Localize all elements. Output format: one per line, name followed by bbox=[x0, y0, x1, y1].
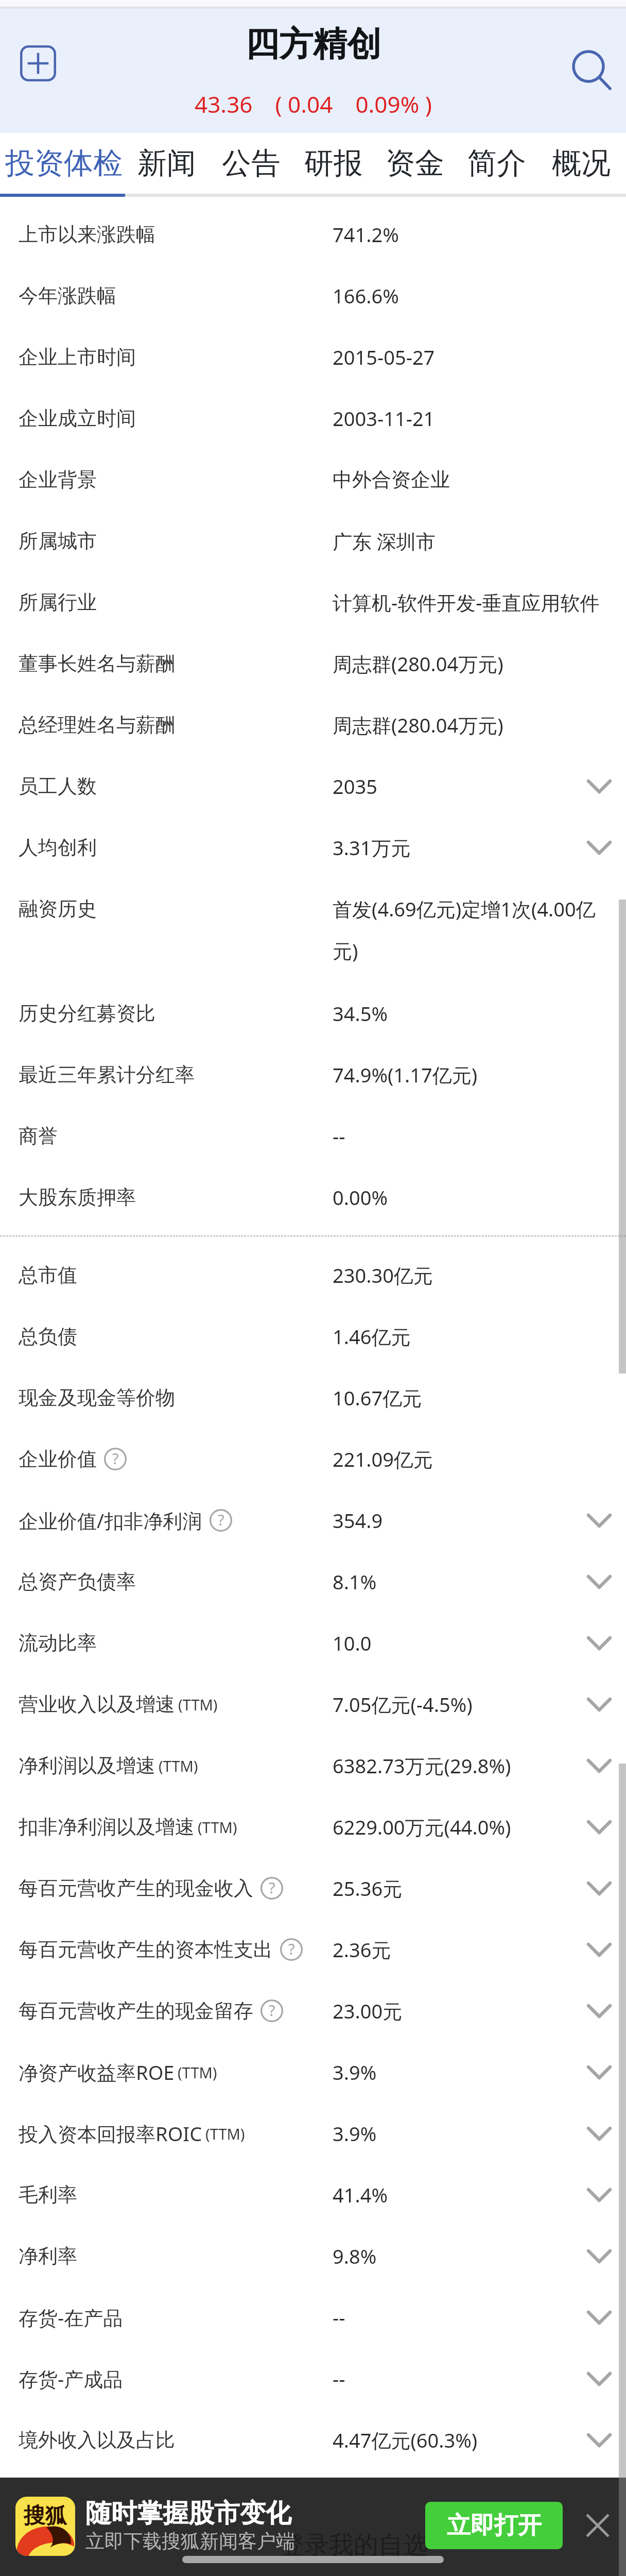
button[interactable]: 所属行业 bbox=[0, 571, 626, 633]
staticText: ? bbox=[218, 1510, 224, 1530]
button[interactable]: 商誉 bbox=[0, 1105, 626, 1166]
staticText: 总资产负债率 bbox=[19, 1569, 136, 1594]
staticText: 总负债 bbox=[19, 1324, 77, 1349]
staticText: 概况 bbox=[552, 145, 611, 182]
staticText: 8.1% bbox=[333, 1568, 377, 1595]
button[interactable]: 简介 bbox=[462, 133, 532, 194]
button[interactable]: 每百元营收产生的现金收入 bbox=[0, 1857, 626, 1919]
staticText: 6382.73万元(29.8%) bbox=[333, 1752, 511, 1779]
button[interactable]: 资金 bbox=[380, 133, 449, 194]
staticText: 43.36 ( 0.04 0.09% ) bbox=[195, 89, 432, 120]
staticText: 3.31万元 bbox=[333, 834, 411, 861]
staticText: 2035 bbox=[333, 773, 377, 800]
button[interactable]: 公告 bbox=[216, 133, 286, 194]
staticText: 周志群(280.04万元) bbox=[333, 650, 503, 677]
staticText: 净利润以及增速 bbox=[19, 1753, 155, 1778]
staticText: 资金 bbox=[386, 145, 444, 182]
button[interactable]: 人均创利 bbox=[0, 817, 626, 878]
staticText: 周志群(280.04万元) bbox=[333, 711, 503, 738]
button[interactable]: 净利润以及增速 bbox=[0, 1735, 626, 1796]
staticText: 企业价值 bbox=[19, 1447, 97, 1471]
button[interactable]: 销售占比 bbox=[0, 2470, 626, 2532]
button[interactable]: 历史分红募资比 bbox=[0, 982, 626, 1044]
button[interactable]: 投资体检 bbox=[0, 133, 129, 194]
button[interactable]: 净利率 bbox=[0, 2225, 626, 2286]
button[interactable]: 研报 bbox=[299, 133, 368, 194]
button[interactable]: 投入资本回报率ROIC bbox=[0, 2103, 626, 2164]
staticText: 7.05亿元(-4.5%) bbox=[333, 1691, 473, 1718]
staticText: 10.8% bbox=[333, 2540, 388, 2567]
button[interactable]: 企业价值/扣非净利润 bbox=[0, 1489, 626, 1551]
staticText: 简介 bbox=[467, 145, 526, 182]
staticText: 4.47亿元(60.3%) bbox=[333, 2427, 478, 2453]
button[interactable]: 现金及现金等价物 bbox=[0, 1367, 626, 1428]
staticText: 首发(4.69亿元)定增1次(4.00亿 bbox=[333, 895, 596, 922]
staticText: 境外收入以及占比 bbox=[19, 2428, 175, 2452]
button[interactable]: 大股东质押率 bbox=[0, 1166, 626, 1228]
button[interactable]: Close advertisement bbox=[586, 2514, 610, 2537]
button[interactable]: 融资历史 bbox=[0, 878, 626, 982]
button[interactable]: 新闻 bbox=[132, 133, 201, 194]
button[interactable]: 扣非净利润以及增速 bbox=[0, 1796, 626, 1857]
button[interactable]: 概况 bbox=[546, 133, 616, 194]
staticText: 营业收入以及增速 bbox=[19, 1692, 175, 1717]
button[interactable]: 每百元营收产生的资本性支出 bbox=[0, 1919, 626, 1980]
staticText: 10.67亿元 bbox=[333, 1384, 422, 1411]
button[interactable]: 总市值 bbox=[0, 1244, 626, 1306]
button[interactable]: 境外收入以及占比 bbox=[0, 2409, 626, 2470]
staticText: 0.00% bbox=[333, 1184, 388, 1211]
staticText: 2015-05-27 bbox=[333, 344, 435, 370]
staticText: 扣非净利润以及增速 bbox=[19, 1815, 195, 1839]
button[interactable]: 员工人数 bbox=[0, 755, 626, 817]
button[interactable]: 存货-在产品 bbox=[0, 2286, 626, 2348]
button[interactable]: 研发占比 bbox=[0, 2532, 626, 2576]
button[interactable]: 营业收入以及增速 bbox=[0, 1673, 626, 1735]
button[interactable]: 最近三年累计分红率 bbox=[0, 1044, 626, 1105]
staticText: ? bbox=[269, 2000, 275, 2021]
button[interactable]: 立即打开 bbox=[425, 2502, 563, 2549]
staticText: 3.9% bbox=[333, 2120, 377, 2147]
staticText: 230.30亿元 bbox=[333, 1262, 433, 1289]
staticText: ? bbox=[288, 1939, 295, 1959]
button[interactable]: 企业价值 bbox=[0, 1428, 626, 1489]
button[interactable]: 每百元营收产生的现金留存 bbox=[0, 1980, 626, 2041]
staticText: 历史分红募资比 bbox=[19, 1001, 155, 1026]
staticText: 元) bbox=[333, 937, 358, 964]
staticText: (TTM) bbox=[159, 1756, 198, 1776]
staticText: 净利率 bbox=[19, 2244, 77, 2268]
staticText: 计算机-软件开发-垂直应用软件 bbox=[333, 589, 600, 616]
button[interactable]: 净资产收益率ROE bbox=[0, 2041, 626, 2103]
staticText: 41.4% bbox=[333, 2181, 388, 2208]
button[interactable]: 存货-产成品 bbox=[0, 2348, 626, 2409]
button[interactable]: 今年涨跌幅 bbox=[0, 265, 626, 326]
button[interactable]: 总经理姓名与薪酬 bbox=[0, 694, 626, 755]
staticText: 1.46亿元 bbox=[333, 1323, 411, 1350]
button[interactable]: 企业上市时间 bbox=[0, 326, 626, 387]
staticText: (TTM) bbox=[198, 1817, 237, 1837]
staticText: 登录我的自选 bbox=[280, 2530, 428, 2561]
staticText: -- bbox=[333, 2304, 345, 2331]
staticText: 所属城市 bbox=[19, 529, 97, 553]
button[interactable]: 董事长姓名与薪酬 bbox=[0, 633, 626, 694]
staticText: 每百元营收产生的现金留存 bbox=[19, 1998, 253, 2023]
button[interactable]: 毛利率 bbox=[0, 2164, 626, 2225]
button[interactable]: 流动比率 bbox=[0, 1612, 626, 1673]
staticText: 74.9%(1.17亿元) bbox=[333, 1061, 478, 1088]
button[interactable]: Add to watchlist bbox=[20, 45, 56, 81]
staticText: 现金及现金等价物 bbox=[19, 1385, 175, 1410]
staticText: 企业背景 bbox=[19, 467, 97, 492]
button[interactable]: 企业背景 bbox=[0, 449, 626, 510]
button[interactable]: 总资产负债率 bbox=[0, 1551, 626, 1612]
staticText: 研发占比 bbox=[19, 2541, 97, 2566]
button[interactable]: 总负债 bbox=[0, 1306, 626, 1367]
button[interactable]: 所属城市 bbox=[0, 510, 626, 571]
staticText: 商誉 bbox=[19, 1124, 58, 1148]
staticText: 每百元营收产生的现金收入 bbox=[19, 1876, 253, 1901]
button[interactable]: 企业成立时间 bbox=[0, 387, 626, 449]
staticText: 净资产收益率ROE bbox=[19, 2059, 175, 2086]
button[interactable]: 上市以来涨跌幅 bbox=[0, 204, 626, 265]
staticText: 随时掌握股市变化 bbox=[85, 2497, 291, 2530]
staticText: 毛利率 bbox=[19, 2182, 77, 2207]
staticText: 投资体检 bbox=[5, 145, 123, 182]
button[interactable]: Search bbox=[569, 43, 611, 86]
